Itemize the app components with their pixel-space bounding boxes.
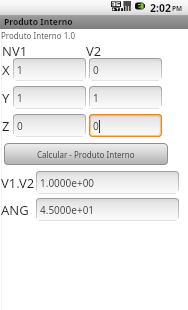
other: 3G data — [111, 1, 121, 11]
staticText: 0 — [93, 63, 99, 77]
staticText: Calcular - Produto Interno — [37, 149, 135, 160]
button[interactable]: 4.5000e+01 — [36, 198, 179, 221]
staticText: NV1 — [2, 42, 28, 60]
staticText: Produto Interno — [4, 16, 73, 28]
staticText: X — [2, 61, 10, 79]
staticText: V2 — [86, 42, 102, 60]
staticText: Z — [2, 117, 10, 135]
staticText: PM — [172, 4, 183, 13]
staticText: V1.V2 — [1, 174, 35, 192]
button[interactable]: 0 — [13, 114, 86, 137]
other: Battery — [135, 2, 145, 10]
staticText: 4.5000e+01 — [40, 203, 95, 217]
staticText: ANG — [1, 201, 29, 219]
button[interactable]: 1.0000e+00 — [36, 171, 179, 194]
button[interactable]: 0 — [89, 58, 162, 81]
other: Signal strength — [121, 1, 131, 11]
button[interactable]: 1 — [13, 86, 86, 109]
button[interactable]: 1 — [13, 58, 86, 81]
button[interactable]: 0 — [89, 114, 162, 137]
staticText: 0 — [17, 119, 23, 133]
staticText: 0 — [93, 119, 99, 133]
staticText: 1 — [17, 91, 23, 105]
staticText: 1 — [17, 63, 23, 77]
staticText: Y — [2, 89, 10, 107]
button[interactable]: Calcular - Produto Interno — [4, 143, 168, 165]
button[interactable]: 1 — [89, 86, 162, 109]
staticText: 1 — [93, 91, 99, 105]
staticText: Produto Interno 1.0 — [1, 30, 76, 41]
staticText: 1.0000e+00 — [40, 176, 95, 190]
staticText: 2:02 — [150, 1, 171, 15]
